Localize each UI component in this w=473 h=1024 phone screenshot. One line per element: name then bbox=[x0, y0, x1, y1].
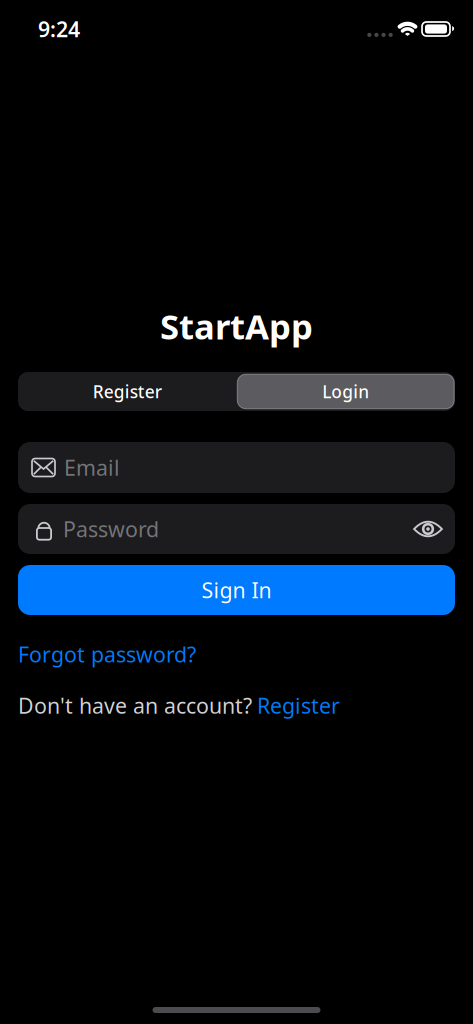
button[interactable]: Forgot password? bbox=[0, 640, 473, 668]
staticText: Forgot password? bbox=[18, 640, 196, 668]
staticText: Register bbox=[93, 380, 162, 403]
staticText: Don't have an account? bbox=[18, 691, 252, 720]
button[interactable]: Login bbox=[236, 372, 455, 411]
button[interactable]: Register bbox=[252, 691, 340, 720]
button[interactable]: Sign In bbox=[0, 565, 473, 615]
staticText: Register bbox=[257, 691, 340, 720]
button[interactable]: Show password bbox=[407, 513, 449, 545]
staticText: Sign In bbox=[201, 576, 271, 604]
staticText: Email bbox=[64, 453, 120, 482]
button[interactable]: Register bbox=[18, 372, 236, 411]
staticText: Login bbox=[322, 380, 369, 403]
staticText: Password bbox=[63, 515, 159, 543]
staticText: 9:24 bbox=[38, 15, 80, 43]
staticText: StartApp bbox=[160, 303, 313, 349]
staticText: Login bbox=[322, 380, 369, 403]
